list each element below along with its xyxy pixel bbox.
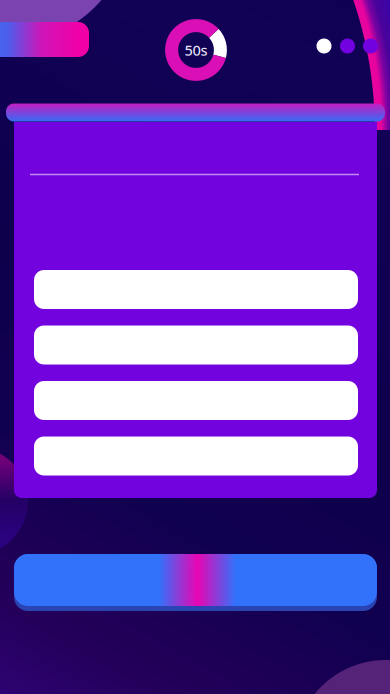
button[interactable]: Answer option bbox=[34, 436, 358, 475]
button[interactable]: Answer option bbox=[34, 325, 358, 364]
button[interactable]: Answer option bbox=[34, 381, 358, 420]
button[interactable]: Answer option bbox=[34, 270, 358, 309]
button[interactable]: Continue bbox=[14, 554, 377, 611]
button[interactable]: Progress bbox=[0, 22, 89, 57]
staticText: 50s bbox=[184, 40, 207, 60]
